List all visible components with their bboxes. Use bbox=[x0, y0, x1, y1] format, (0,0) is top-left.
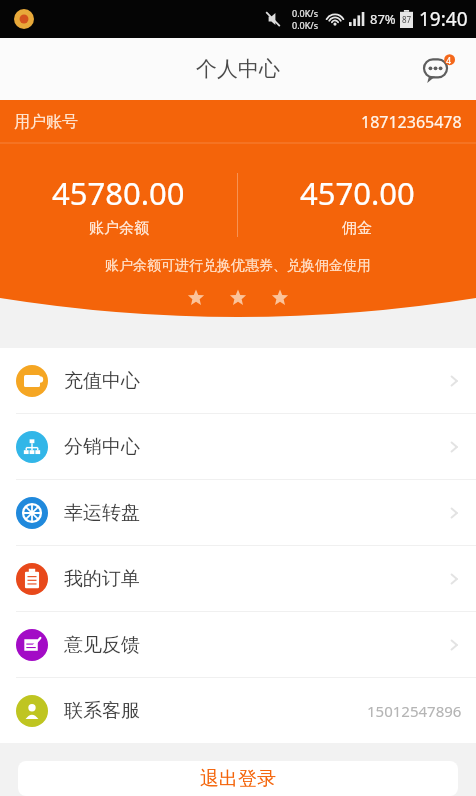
staticText: 4 bbox=[446, 54, 452, 66]
staticText: 0.0K/s bbox=[292, 7, 318, 19]
staticText: 19:40 bbox=[419, 6, 468, 32]
button[interactable]: 45780.00 bbox=[0, 165, 237, 245]
staticText: 87% bbox=[370, 10, 396, 28]
button[interactable]: 退出登录 bbox=[18, 761, 458, 796]
button[interactable]: 联系客服 bbox=[0, 678, 476, 743]
staticText: 佣金 bbox=[342, 219, 372, 238]
staticText: 15012547896 bbox=[367, 701, 462, 721]
button[interactable]: 我的订单 bbox=[0, 546, 476, 611]
button[interactable]: 意见反馈 bbox=[0, 612, 476, 677]
staticText: 账户余额可进行兑换优惠券、兑换佣金使用 bbox=[0, 257, 476, 275]
staticText: 幸运转盘 bbox=[64, 501, 140, 525]
staticText: 账户余额 bbox=[89, 219, 149, 238]
button[interactable]: 分销中心 bbox=[0, 414, 476, 479]
staticText: 87 bbox=[402, 14, 412, 25]
staticText: 18712365478 bbox=[361, 111, 462, 133]
button[interactable]: 4570.00 bbox=[238, 165, 476, 245]
button[interactable]: 幸运转盘 bbox=[0, 480, 476, 545]
staticText: 退出登录 bbox=[200, 767, 276, 791]
staticText: 45780.00 bbox=[52, 172, 185, 214]
staticText: 我的订单 bbox=[64, 567, 140, 591]
staticText: 充值中心 bbox=[64, 369, 140, 393]
staticText: 4570.00 bbox=[300, 172, 415, 214]
button[interactable]: 充值中心 bbox=[0, 348, 476, 413]
button[interactable]: Messages bbox=[418, 47, 462, 91]
staticText: 0.0K/s bbox=[292, 19, 318, 31]
staticText: 个人中心 bbox=[196, 56, 280, 82]
staticText: 联系客服 bbox=[64, 699, 140, 723]
staticText: 意见反馈 bbox=[64, 633, 140, 657]
staticText: 用户账号 bbox=[14, 112, 78, 132]
staticText: 分销中心 bbox=[64, 435, 140, 459]
